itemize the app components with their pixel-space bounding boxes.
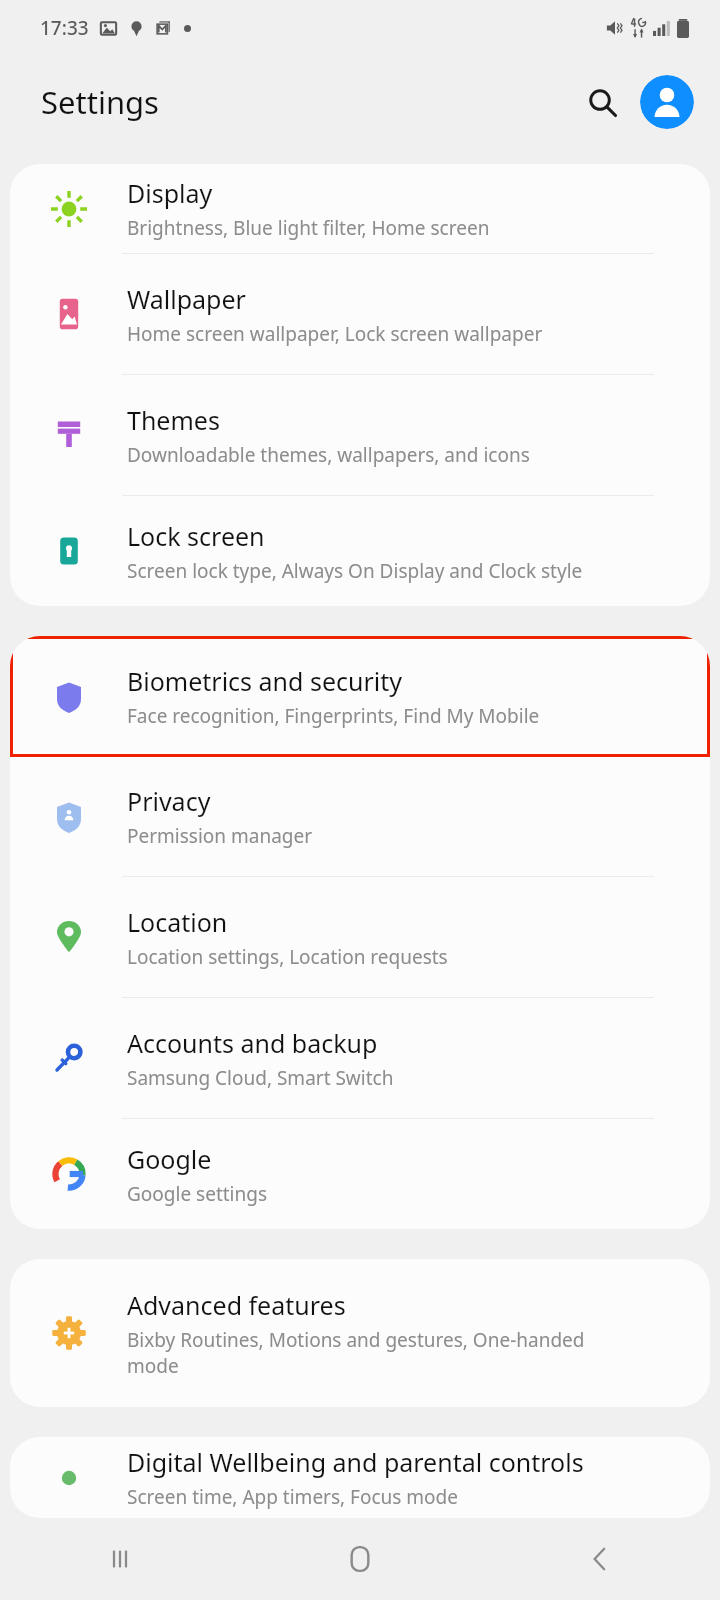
staticText: Screen time, App timers, Focus mode [127,1484,458,1510]
staticText: Location settings, Location requests [127,944,448,970]
staticText: Brightness, Blue light filter, Home scre… [127,215,490,241]
staticText: Display [127,176,213,210]
staticText: Digital Wellbeing and parental controls [127,1445,584,1479]
button[interactable]: Privacy [10,757,710,876]
staticText: Advanced features [127,1288,346,1322]
staticText: Privacy [127,784,211,818]
button[interactable]: Accounts and backup [10,998,710,1118]
button[interactable]: Biometrics and security [10,636,710,757]
staticText: Google [127,1142,212,1176]
button[interactable]: Recents [76,1518,164,1600]
staticText: Downloadable themes, wallpapers, and ico… [127,442,530,468]
staticText: Samsung Cloud, Smart Switch [127,1065,394,1091]
staticText: Home screen wallpaper, Lock screen wallp… [127,321,543,347]
button[interactable]: Themes [10,375,710,495]
button[interactable]: Samsung account [640,75,694,129]
button[interactable]: Back [556,1518,644,1600]
staticText: Wallpaper [127,282,246,316]
button[interactable]: Digital Wellbeing and parental controls [10,1437,710,1518]
staticText: 17:33 [40,15,89,41]
staticText: Biometrics and security [127,664,403,698]
button[interactable]: Search [576,76,628,128]
staticText: Settings [41,81,159,123]
staticText: Themes [127,403,220,437]
staticText: Bixby Routines, Motions and gestures, On… [127,1327,585,1379]
button[interactable]: Google [10,1119,710,1229]
button[interactable]: Display [10,164,710,253]
button[interactable]: Wallpaper [10,254,710,374]
staticText: Accounts and backup [127,1026,378,1060]
staticText: Face recognition, Fingerprints, Find My … [127,703,540,729]
button[interactable]: Location [10,877,710,997]
staticText: Lock screen [127,519,265,553]
staticText: Google settings [127,1181,268,1207]
button[interactable]: Lock screen [10,496,710,606]
staticText: Permission manager [127,823,313,849]
button[interactable]: Advanced features [10,1259,710,1407]
button[interactable]: Home [316,1518,404,1600]
staticText: Location [127,905,228,939]
staticText: Screen lock type, Always On Display and … [127,558,583,584]
